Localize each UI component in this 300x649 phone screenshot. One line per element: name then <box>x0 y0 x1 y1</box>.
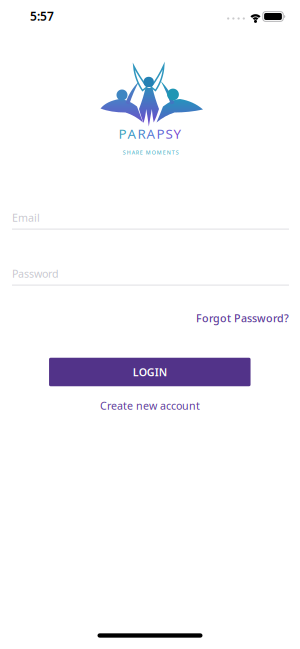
staticText: A <box>127 125 136 142</box>
staticText: S H A R E M O M E N T S <box>123 149 179 156</box>
button[interactable]: Email <box>12 210 289 230</box>
staticText: Forgot Password? <box>196 311 289 325</box>
staticText: S <box>165 125 172 142</box>
staticText: Password <box>12 266 59 281</box>
button[interactable]: LOGIN <box>49 358 251 386</box>
button[interactable]: Forgot Password? <box>196 311 289 325</box>
staticText: Y <box>173 125 181 142</box>
button[interactable]: Password <box>12 266 289 286</box>
staticText: R <box>137 125 145 142</box>
staticText: Email <box>12 210 40 225</box>
staticText: LOGIN <box>133 365 167 379</box>
staticText: P <box>156 125 164 142</box>
staticText: A <box>146 125 155 142</box>
button[interactable]: Create new account <box>100 398 200 413</box>
staticText: P <box>118 125 126 142</box>
staticText: Create new account <box>100 398 200 413</box>
staticText: 5:57 <box>30 8 54 24</box>
